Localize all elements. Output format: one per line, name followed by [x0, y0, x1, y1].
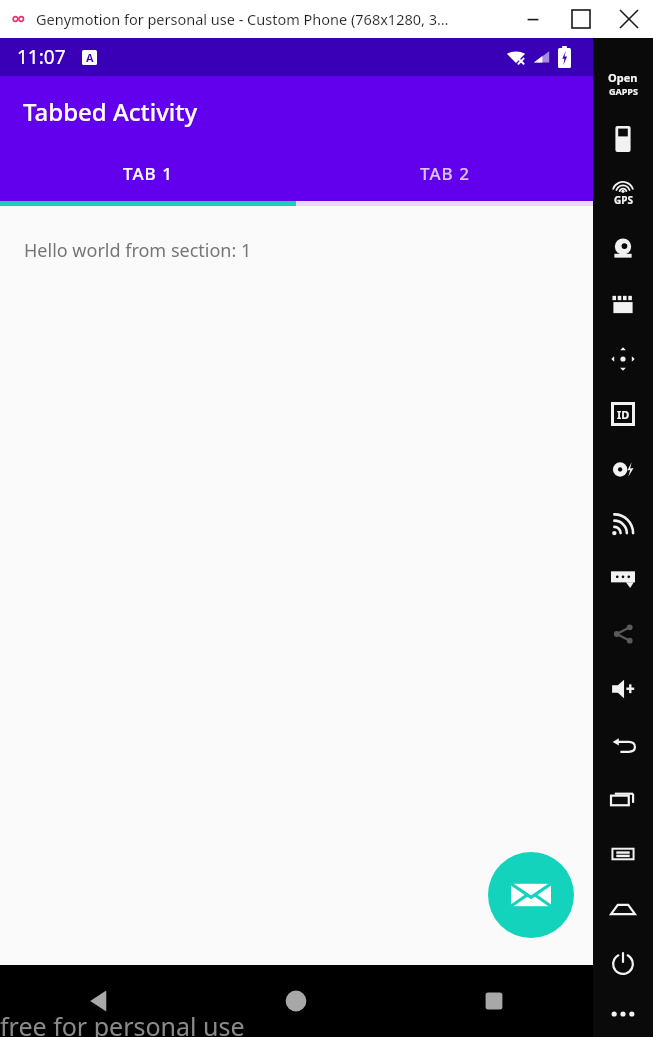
button[interactable]: Home [593, 881, 653, 936]
staticText: GPS [614, 193, 633, 207]
staticText: A [86, 50, 94, 65]
staticText: TAB 2 [420, 162, 470, 185]
button[interactable]: More options [593, 991, 653, 1037]
staticText: Tabbed Activity [23, 95, 198, 128]
staticText: GAPPS [609, 85, 638, 97]
staticText: Hello world from section: 1 [24, 238, 252, 263]
button[interactable]: Open GAPPS [593, 56, 653, 111]
staticText: free for personal use [0, 1009, 245, 1037]
button[interactable]: Phone / SMS [593, 551, 653, 606]
button[interactable]: Battery [593, 111, 653, 166]
button[interactable]: Back [0, 965, 197, 1037]
button[interactable]: Screen record [593, 276, 653, 331]
staticText: TAB 1 [123, 162, 173, 185]
button[interactable]: Network [593, 496, 653, 551]
button[interactable]: Identifiers [593, 386, 653, 441]
button[interactable]: Maximize [557, 0, 605, 38]
button[interactable]: Menu [593, 826, 653, 881]
button[interactable]: Share [593, 606, 653, 661]
button[interactable]: Close [605, 0, 653, 38]
staticText: Genymotion for personal use - Custom Pho… [36, 9, 449, 29]
button[interactable]: Virtual sensors [593, 331, 653, 386]
button[interactable]: Power [593, 936, 653, 991]
button[interactable]: Recent apps [395, 965, 593, 1037]
button[interactable]: Minimize [509, 0, 557, 38]
button[interactable]: TAB 1 [0, 146, 296, 201]
button[interactable]: Back [593, 716, 653, 771]
button[interactable]: Home [197, 965, 395, 1037]
button[interactable]: Recent apps [593, 771, 653, 826]
button[interactable]: GPS [593, 166, 653, 221]
button[interactable]: TAB 2 [296, 146, 593, 201]
staticText: 11:07 [17, 44, 66, 70]
staticText: Open [608, 70, 638, 85]
staticText: ID [617, 407, 630, 422]
button[interactable]: Volume up [593, 661, 653, 716]
button[interactable]: Disk IO [593, 441, 653, 496]
button[interactable]: Compose email [488, 852, 574, 938]
button[interactable]: Camera [593, 221, 653, 276]
